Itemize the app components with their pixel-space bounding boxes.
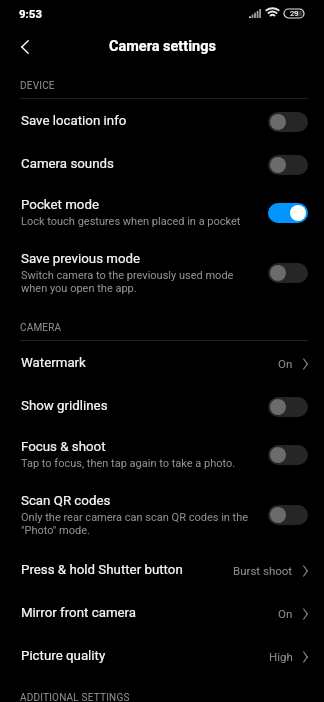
staticText: ADDITIONAL SETTINGS: [20, 692, 130, 702]
staticText: Switch camera to the previously used mod…: [21, 269, 234, 295]
staticText: Picture quality: [21, 648, 106, 664]
staticText: On: [278, 607, 293, 620]
staticText: Pocket mode: [21, 197, 99, 213]
button[interactable]: Pocket mode: [0, 186, 324, 239]
staticText: High: [269, 650, 293, 663]
button[interactable]: Switch off: [268, 505, 308, 525]
staticText: Burst shoot: [233, 564, 293, 577]
staticText: 9:53: [19, 7, 43, 20]
button[interactable]: Mirror front camera: [0, 592, 324, 635]
button[interactable]: Switch off: [268, 397, 308, 417]
button[interactable]: Back: [0, 24, 45, 69]
staticText: Focus & shoot: [21, 439, 106, 455]
staticText: Save previous mode: [21, 251, 141, 267]
staticText: DEVICE: [20, 80, 55, 92]
button[interactable]: Switch on: [268, 203, 308, 223]
staticText: CAMERA: [20, 322, 62, 334]
button[interactable]: Show gridlines: [0, 385, 324, 428]
staticText: On: [278, 357, 293, 370]
staticText: Scan QR codes: [21, 493, 111, 509]
button[interactable]: Switch off: [268, 112, 308, 132]
staticText: Tap to focus, then tap again to take a p…: [21, 457, 236, 470]
staticText: Watermark: [21, 355, 86, 371]
button[interactable]: Watermark: [0, 342, 324, 385]
button[interactable]: Save location info: [0, 100, 324, 143]
button[interactable]: Scan QR codes: [0, 481, 324, 549]
staticText: Only the rear camera can scan QR codes i…: [21, 511, 249, 537]
button[interactable]: Picture quality: [0, 635, 324, 678]
staticText: Lock touch gestures when placed in a poc…: [21, 215, 241, 228]
button[interactable]: Switch off: [268, 263, 308, 283]
button[interactable]: Camera sounds: [0, 143, 324, 186]
button[interactable]: Switch off: [268, 445, 308, 465]
staticText: Press & hold Shutter button: [21, 562, 183, 578]
staticText: Save location info: [21, 113, 127, 129]
button[interactable]: Focus & shoot: [0, 428, 324, 481]
staticText: 29: [290, 9, 299, 18]
button[interactable]: Save previous mode: [0, 239, 324, 307]
staticText: Camera settings: [109, 38, 216, 55]
button[interactable]: Switch off: [268, 155, 308, 175]
button[interactable]: Press & hold Shutter button: [0, 549, 324, 592]
staticText: Mirror front camera: [21, 605, 137, 621]
staticText: Camera sounds: [21, 156, 114, 172]
staticText: Show gridlines: [21, 398, 108, 414]
